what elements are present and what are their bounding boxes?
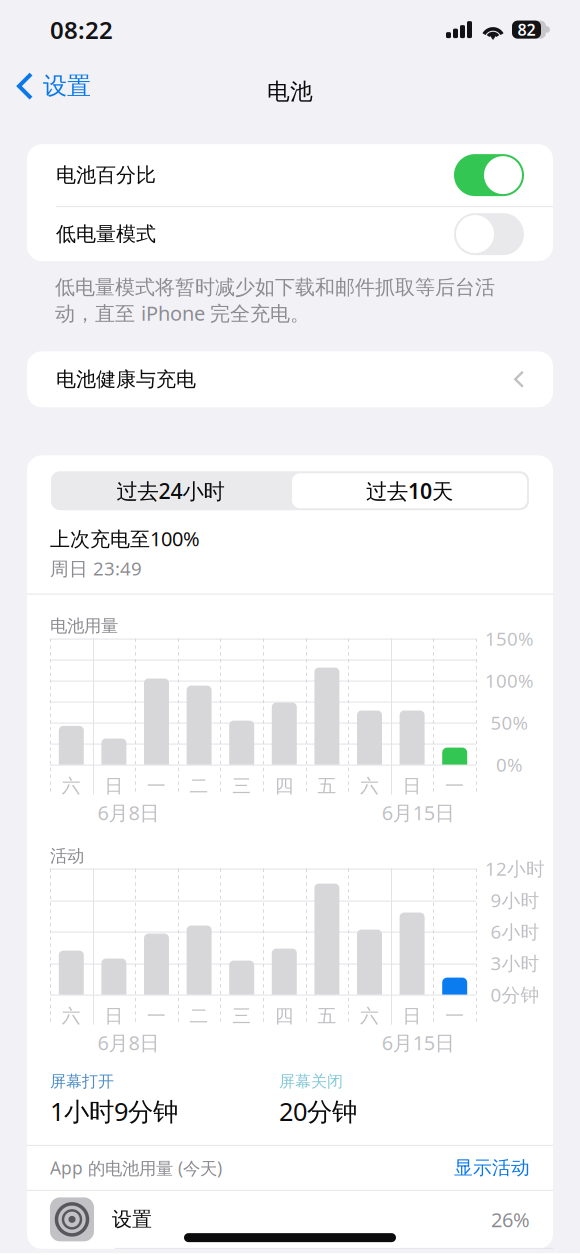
staticText: 1小时9分钟 <box>50 1094 178 1128</box>
staticText: 过去24小时 <box>116 477 224 505</box>
staticText: 一 <box>445 775 464 797</box>
staticText: 三 <box>232 1005 251 1027</box>
staticText: 82 <box>517 19 535 40</box>
staticText: 50% <box>490 710 528 735</box>
staticText: 日 <box>104 1005 123 1027</box>
staticText: 6月8日 <box>98 1029 160 1056</box>
staticText: 过去10天 <box>366 477 453 505</box>
staticText: 日 <box>104 775 123 797</box>
staticText: 显示活动 <box>454 1156 530 1179</box>
staticText: 6小时 <box>490 919 539 944</box>
button[interactable]: 设置 <box>0 63 105 109</box>
button[interactable]: 电池健康与充电 <box>27 351 553 407</box>
staticText: 六 <box>360 775 379 797</box>
staticText: 6月15日 <box>382 799 455 826</box>
staticText: 08:22 <box>50 14 113 46</box>
staticText: 电池 <box>267 78 313 105</box>
staticText: 低电量模式将暂时减少如下载和邮件抓取等后台活动，直至 iPhone 完全充电。 <box>55 275 495 326</box>
button[interactable]: 过去24小时 <box>51 471 290 510</box>
staticText: 六 <box>360 1005 379 1027</box>
staticText: App 的电池用量 (今天) <box>50 1156 222 1179</box>
staticText: 电池百分比 <box>56 163 156 187</box>
staticText: 四 <box>275 1005 294 1027</box>
staticText: 一 <box>147 775 166 797</box>
staticText: 设置 <box>112 1207 152 1232</box>
button[interactable]: 过去10天 <box>292 473 527 508</box>
staticText: 6月8日 <box>98 799 160 826</box>
staticText: 屏幕关闭 <box>279 1072 343 1091</box>
staticText: 三 <box>232 775 251 797</box>
staticText: 20分钟 <box>279 1094 357 1128</box>
staticText: 0% <box>496 752 523 777</box>
staticText: 二 <box>190 1005 209 1027</box>
staticText: 六 <box>62 1005 81 1027</box>
staticText: 低电量模式 <box>56 222 156 246</box>
staticText: 设置 <box>43 71 91 101</box>
staticText: 一 <box>147 1005 166 1027</box>
staticText: 电池健康与充电 <box>56 367 196 392</box>
staticText: 五 <box>317 1005 336 1027</box>
staticText: 26% <box>491 1206 530 1233</box>
staticText: 0分钟 <box>490 982 539 1007</box>
staticText: 五 <box>317 775 336 797</box>
staticText: 日 <box>403 775 422 797</box>
staticText: 3小时 <box>490 951 539 975</box>
staticText: 上次充电至100% <box>50 525 200 552</box>
staticText: 二 <box>190 775 209 797</box>
staticText: 9小时 <box>490 888 539 912</box>
staticText: 活动 <box>50 845 84 867</box>
staticText: 100% <box>485 668 534 693</box>
staticText: 一 <box>445 1005 464 1027</box>
staticText: 日 <box>403 1005 422 1027</box>
staticText: 四 <box>275 775 294 797</box>
staticText: 屏幕打开 <box>50 1072 114 1091</box>
staticText: 150% <box>485 626 534 651</box>
staticText: 周日 23:49 <box>50 556 142 581</box>
staticText: 电池用量 <box>50 615 118 637</box>
staticText: 六 <box>62 775 81 797</box>
button[interactable]: 显示活动 <box>454 1148 530 1187</box>
staticText: 6月15日 <box>382 1029 455 1056</box>
staticText: 12小时 <box>485 856 545 881</box>
